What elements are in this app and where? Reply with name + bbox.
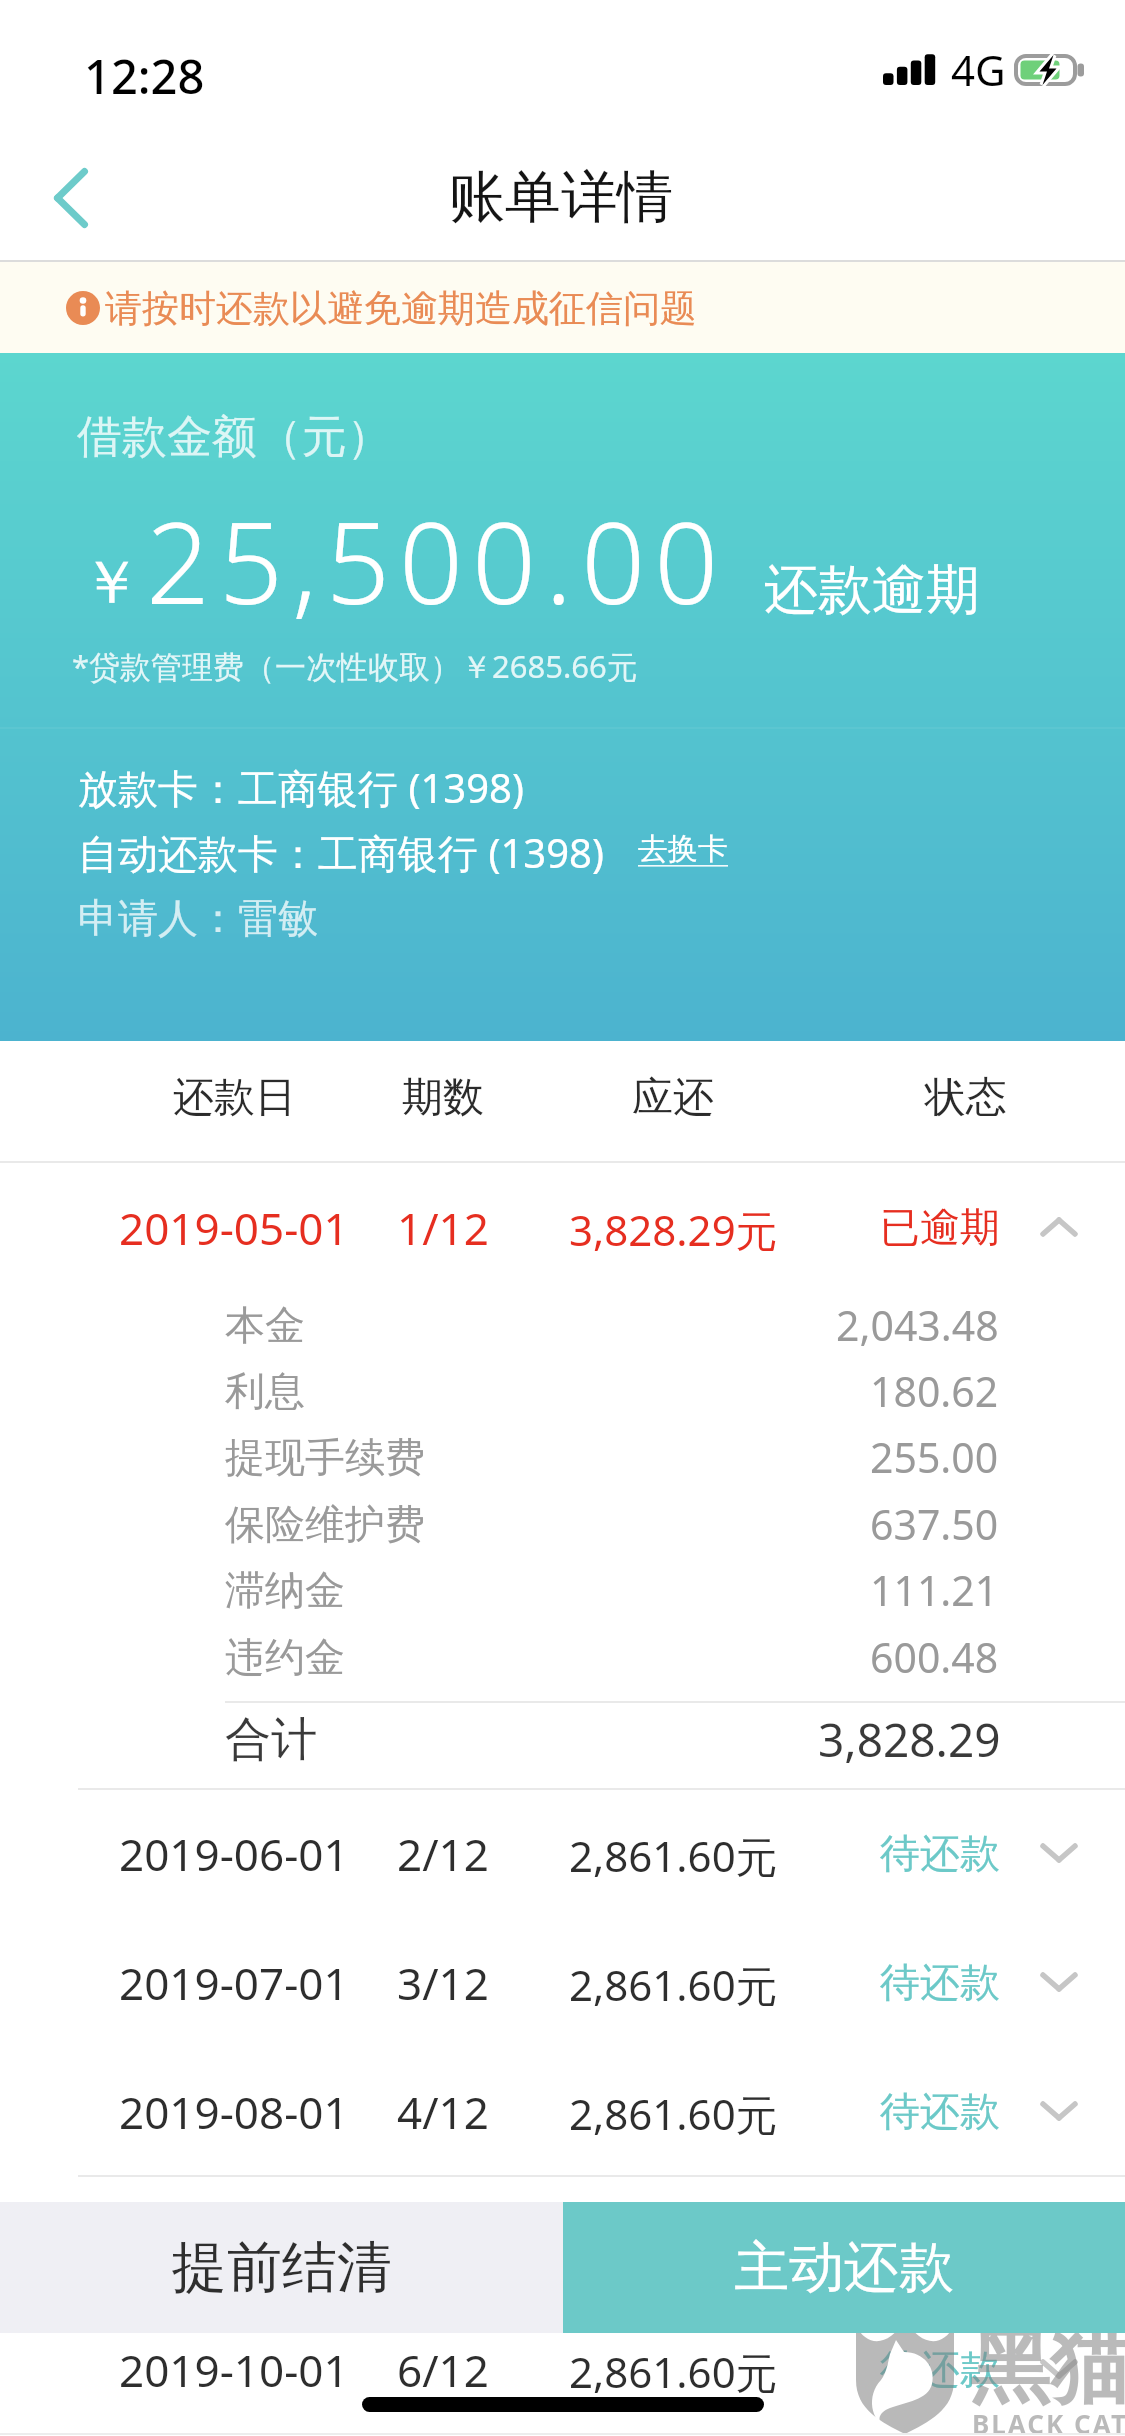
- staticText: 保险维护费: [225, 1499, 425, 1549]
- staticText: 合计: [225, 1711, 317, 1769]
- staticText: 状态: [925, 1072, 1007, 1124]
- staticText: 3,828.29元: [569, 1201, 778, 1258]
- staticText: 期数: [402, 1072, 484, 1124]
- staticText: 2019-08-01: [119, 2082, 349, 2142]
- staticText: 111.21: [870, 1562, 999, 1618]
- staticText: 本金: [225, 1300, 305, 1350]
- staticText: 600.48: [870, 1629, 999, 1685]
- button[interactable]: Expand instalment details: [1009, 2329, 1109, 2409]
- button[interactable]: Collapse instalment details: [1009, 1187, 1109, 1267]
- staticText: 已逾期: [880, 1202, 1000, 1252]
- staticText: 1/12: [397, 1198, 489, 1258]
- staticText: 请按时还款以避免逾期造成征信问题: [105, 285, 697, 332]
- button[interactable]: 去换卡: [638, 828, 730, 870]
- staticText: 6/12: [397, 2340, 489, 2400]
- staticText: 还款日: [173, 1072, 296, 1124]
- staticText: 2019-06-01: [119, 1824, 349, 1884]
- staticText: 提前结清: [172, 2233, 392, 2302]
- staticText: 180.62: [870, 1363, 999, 1419]
- staticText: 放款卡：工商银行 (1398): [78, 760, 524, 815]
- button[interactable]: 2019-05-01: [0, 1163, 1125, 1292]
- button[interactable]: Expand instalment details: [1009, 2071, 1109, 2151]
- button[interactable]: 2019-10-01: [0, 2304, 1125, 2433]
- button[interactable]: 提前结清: [0, 2202, 563, 2333]
- button[interactable]: 2019-07-01: [0, 1917, 1125, 2046]
- staticText: 2019-05-01: [119, 1198, 349, 1258]
- staticText: 2,861.60元: [569, 2343, 778, 2400]
- staticText: 黑猫: [970, 2318, 1125, 2419]
- staticText: 去换卡: [638, 830, 728, 868]
- staticText: 申请人：雷敏: [78, 893, 318, 943]
- staticText: 2/12: [397, 1824, 489, 1884]
- staticText: 2019-07-01: [119, 1953, 349, 2013]
- staticText: 借款金额（元）: [77, 409, 392, 466]
- staticText: 2,861.60元: [569, 1956, 778, 2013]
- staticText: 3,828.29: [818, 1708, 1001, 1771]
- staticText: 2,861.60元: [569, 2085, 778, 2142]
- staticText: 637.50: [870, 1496, 999, 1552]
- button[interactable]: Expand instalment details: [1009, 1813, 1109, 1893]
- button[interactable]: Expand instalment details: [1009, 1942, 1109, 2022]
- staticText: 待还款: [880, 2086, 1000, 2136]
- staticText: 2,861.60元: [569, 1827, 778, 1884]
- button[interactable]: Back: [6, 127, 136, 269]
- staticText: 3/12: [397, 1953, 489, 2013]
- staticText: 25,500.00: [146, 484, 728, 637]
- staticText: 4G: [951, 41, 1006, 98]
- staticText: 违约金: [225, 1632, 345, 1682]
- staticText: 12:28: [84, 44, 205, 108]
- staticText: 账单详情: [449, 162, 673, 233]
- staticText: 待还款: [880, 1828, 1000, 1878]
- staticText: *贷款管理费（一次性收取）￥2685.66元: [72, 645, 638, 687]
- staticText: 还款逾期: [764, 556, 980, 624]
- staticText: 滞纳金: [225, 1565, 345, 1615]
- button[interactable]: 主动还款: [563, 2202, 1125, 2333]
- staticText: 主动还款: [734, 2233, 954, 2302]
- staticText: 2,043.48: [836, 1297, 999, 1353]
- staticText: 利息: [225, 1366, 305, 1416]
- staticText: 待还款: [880, 2344, 1000, 2394]
- staticText: 2019-10-01: [119, 2340, 349, 2400]
- staticText: 提现手续费: [225, 1432, 425, 1482]
- staticText: 255.00: [870, 1429, 999, 1485]
- staticText: 自动还款卡：工商银行 (1398): [78, 825, 604, 880]
- staticText: 4/12: [397, 2082, 489, 2142]
- staticText: ￥: [81, 545, 141, 621]
- staticText: 应还: [632, 1072, 714, 1124]
- staticText: BLACK CAT: [972, 2406, 1125, 2436]
- button[interactable]: 2019-06-01: [0, 1788, 1125, 1917]
- button[interactable]: 2019-08-01: [0, 2046, 1125, 2175]
- staticText: 待还款: [880, 1957, 1000, 2007]
